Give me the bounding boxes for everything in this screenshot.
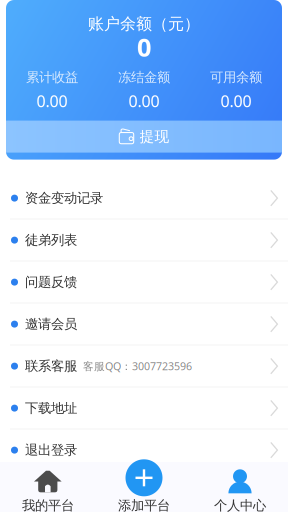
staticText: 账户余额（元） [88,14,200,34]
staticText: 0.00 [36,90,67,112]
button[interactable]: 退出登录 [0,430,288,472]
staticText: 0.00 [128,90,159,112]
staticText: 0.00 [220,90,251,112]
button[interactable]: 联系客服 [0,346,288,388]
button[interactable]: 个人中心 [192,469,288,512]
button[interactable]: 问题反馈 [0,262,288,304]
staticText: 问题反馈 [25,274,77,290]
staticText: 提现 [139,128,169,146]
staticText: 添加平台 [118,497,170,512]
button[interactable]: 下载地址 [0,388,288,430]
staticText: 下载地址 [25,400,77,416]
staticText: 徒弟列表 [25,232,77,248]
staticText: 联系客服 [25,358,77,374]
staticText: 个人中心 [214,497,266,512]
button[interactable]: 提现 [6,121,282,153]
staticText: 累计收益 [26,69,78,85]
staticText: 0 [137,30,151,64]
button[interactable]: 邀请会员 [0,304,288,346]
staticText: 退出登录 [25,442,77,458]
button[interactable]: 添加平台 [96,459,192,512]
staticText: 邀请会员 [25,316,77,332]
staticText: 客服QQ：3007723596 [83,359,192,373]
staticText: 我的平台 [22,497,74,512]
button[interactable]: 徒弟列表 [0,220,288,262]
button[interactable]: 资金变动记录 [0,178,288,220]
staticText: 资金变动记录 [25,190,103,206]
button[interactable]: 我的平台 [0,470,96,512]
staticText: 可用余额 [210,69,262,85]
staticText: 冻结金额 [118,69,170,85]
